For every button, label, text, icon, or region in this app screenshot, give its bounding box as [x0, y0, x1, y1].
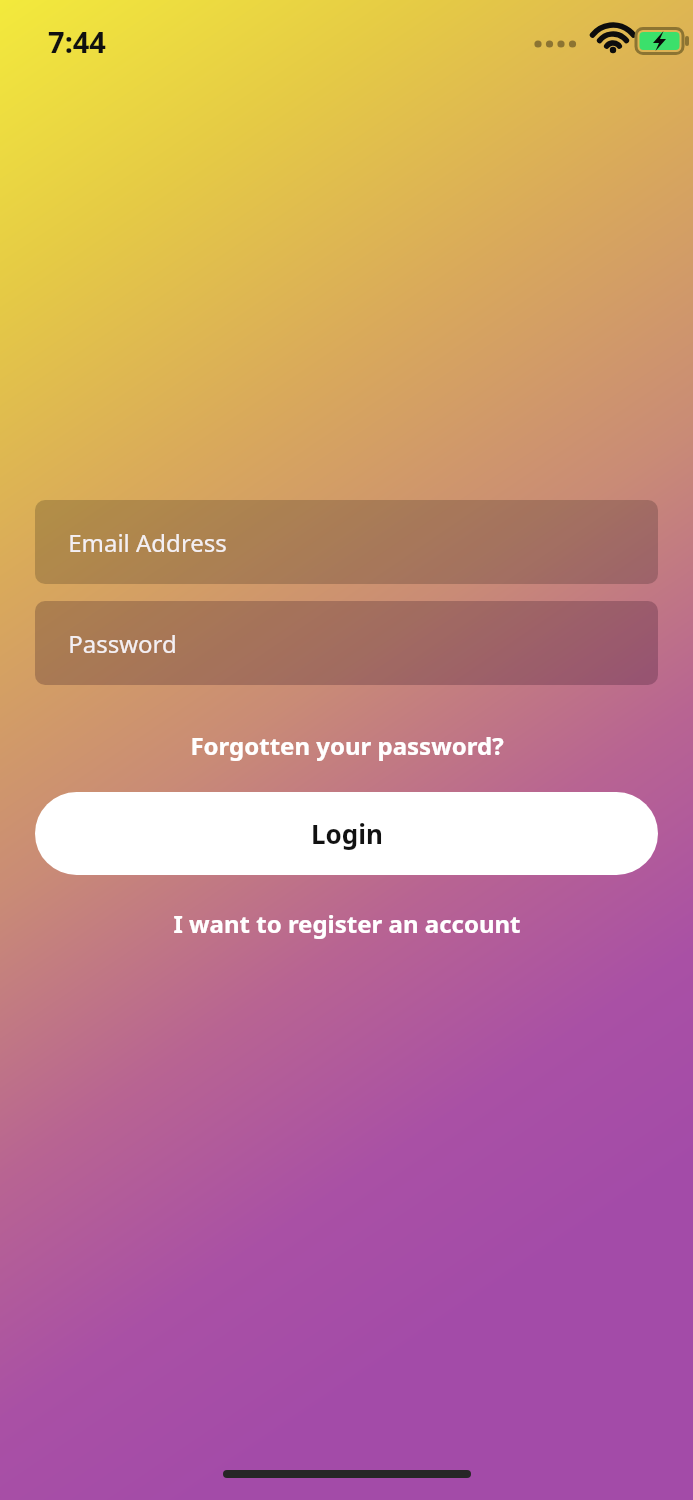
button[interactable]: Login — [35, 792, 658, 875]
staticText: 7:44 — [48, 22, 106, 61]
staticText: Password — [68, 627, 177, 660]
staticText: Forgotten your password? — [190, 729, 504, 762]
staticText: Email Address — [68, 526, 227, 559]
button[interactable]: Email Address — [35, 500, 658, 584]
button[interactable]: Forgotten your password? — [178, 721, 516, 770]
other: Status icons — [533, 21, 665, 61]
button[interactable]: I want to register an account — [161, 899, 533, 948]
staticText: Login — [311, 816, 383, 851]
staticText: I want to register an account — [173, 907, 521, 940]
button[interactable]: Password — [35, 601, 658, 685]
